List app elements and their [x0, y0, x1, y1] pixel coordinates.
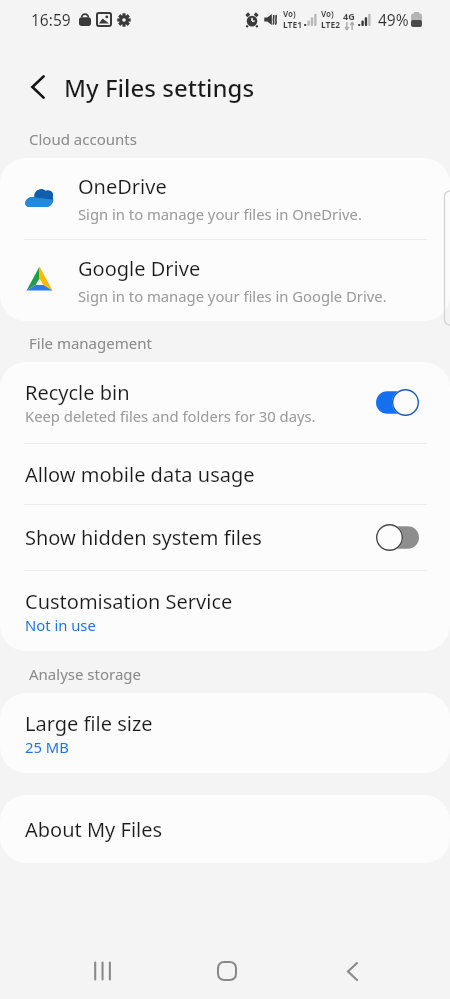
staticText: Cloud accounts: [29, 129, 137, 149]
button[interactable]: Back: [18, 67, 58, 107]
button[interactable]: Toggle: [376, 389, 419, 416]
staticText: Keep deleted files and folders for 30 da…: [25, 406, 316, 426]
button[interactable]: Toggle: [376, 524, 419, 551]
button[interactable]: Customisation Service: [25, 571, 419, 651]
staticText: LTE2: [321, 19, 341, 31]
staticText: Google Drive: [78, 255, 201, 282]
staticText: File management: [29, 333, 152, 353]
staticText: Allow mobile data usage: [25, 461, 255, 488]
staticText: 25 MB: [25, 737, 69, 757]
staticText: Vo): [321, 8, 334, 19]
button[interactable]: Back: [324, 943, 380, 999]
button[interactable]: OneDrive: [0, 158, 450, 239]
button[interactable]: Google Drive: [0, 240, 450, 321]
button[interactable]: Large file size: [25, 693, 419, 773]
staticText: 49%: [378, 9, 409, 30]
staticText: LTE1: [283, 19, 303, 31]
staticText: Sign in to manage your files in Google D…: [78, 286, 387, 306]
button[interactable]: Allow mobile data usage: [25, 444, 419, 504]
staticText: 4G: [343, 10, 355, 22]
staticText: Customisation Service: [25, 588, 233, 615]
button[interactable]: Show hidden system files: [25, 505, 419, 570]
button[interactable]: About My Files: [25, 795, 419, 863]
button[interactable]: Recycle bin: [25, 362, 419, 443]
staticText: About My Files: [25, 816, 163, 843]
button[interactable]: Recent apps: [75, 943, 131, 999]
staticText: Recycle bin: [25, 379, 130, 406]
staticText: Show hidden system files: [25, 524, 262, 551]
staticText: Sign in to manage your files in OneDrive…: [78, 204, 362, 224]
staticText: Vo): [283, 8, 296, 19]
staticText: My Files settings: [64, 71, 255, 104]
staticText: 16:59: [31, 9, 71, 30]
staticText: Not in use: [25, 615, 96, 635]
button[interactable]: Home: [199, 943, 255, 999]
staticText: Large file size: [25, 710, 153, 737]
staticText: Analyse storage: [29, 664, 142, 684]
staticText: OneDrive: [78, 173, 167, 200]
